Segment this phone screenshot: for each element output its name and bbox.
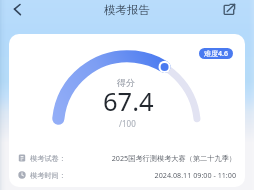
button[interactable]: 难度4.6 bbox=[199, 48, 233, 59]
staticText: 模考试卷： bbox=[30, 154, 66, 163]
staticText: 模考时间： bbox=[30, 171, 66, 180]
button[interactable]: Share bbox=[219, 0, 239, 20]
staticText: 2025国考行测模考大赛（第二十九季） bbox=[66, 153, 236, 163]
staticText: 模考报告 bbox=[104, 3, 150, 17]
staticText: 得分 bbox=[117, 77, 135, 88]
button[interactable]: 模考试卷： bbox=[18, 152, 236, 164]
staticText: 67.4 bbox=[103, 84, 154, 119]
staticText: /100 bbox=[119, 118, 136, 129]
staticText: 2024.08.11 09:00 - 11:00 bbox=[66, 170, 236, 180]
staticText: 难度4.6 bbox=[204, 49, 228, 59]
button[interactable]: Back bbox=[7, 0, 27, 20]
button[interactable]: 模考时间： bbox=[18, 169, 236, 181]
